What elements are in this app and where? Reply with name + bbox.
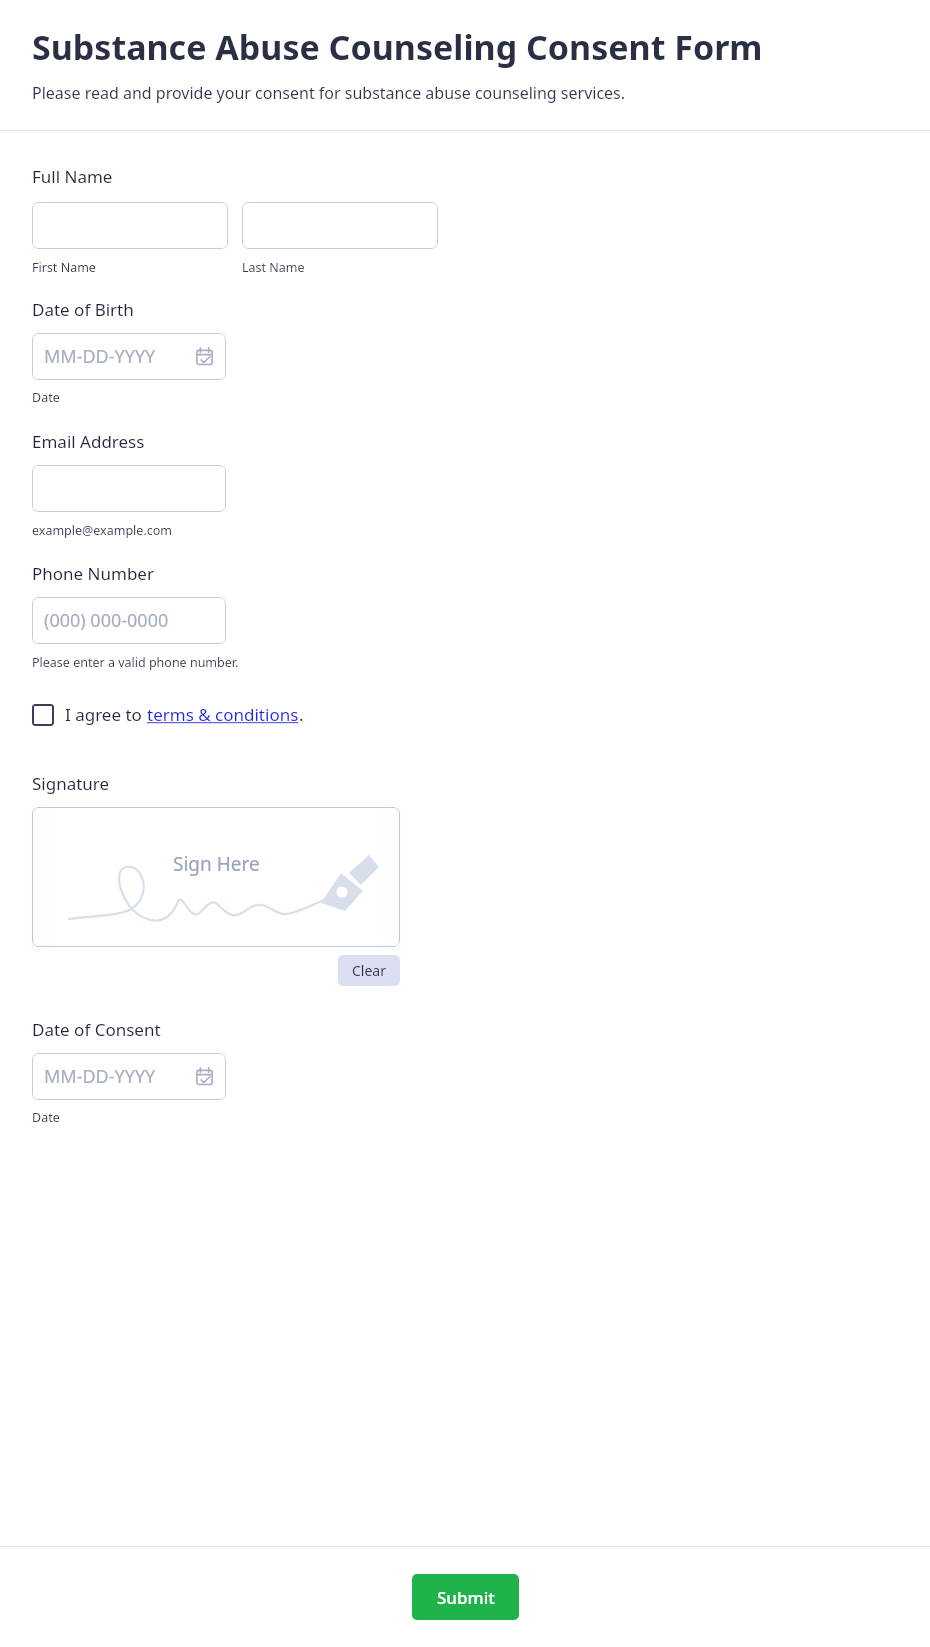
- staticText: .: [299, 703, 304, 726]
- staticText: MM-DD-YYYY: [44, 344, 156, 369]
- staticText: Submit: [437, 1586, 495, 1609]
- staticText: (000) 000-0000: [44, 608, 169, 633]
- staticText: Email Address: [32, 430, 145, 453]
- staticText: Date of Consent: [32, 1018, 161, 1041]
- staticText: I agree to: [65, 703, 147, 726]
- button[interactable]: MM-DD-YYYY: [32, 333, 226, 380]
- staticText: example@example.com: [32, 522, 172, 539]
- staticText: MM-DD-YYYY: [44, 1064, 156, 1089]
- button[interactable]: MM-DD-YYYY: [32, 1053, 226, 1100]
- staticText: Sign Here: [173, 851, 260, 877]
- button[interactable]: [32, 202, 228, 249]
- staticText: Phone Number: [32, 562, 154, 585]
- staticText: First Name: [32, 259, 96, 276]
- staticText: Clear: [352, 961, 386, 980]
- staticText: Last Name: [242, 259, 305, 276]
- staticText: Full Name: [32, 165, 113, 188]
- staticText: Date: [32, 389, 60, 406]
- staticText: Signature: [32, 772, 110, 795]
- staticText: Please enter a valid phone number.: [32, 654, 239, 671]
- button[interactable]: Clear: [338, 955, 400, 986]
- button[interactable]: [242, 202, 438, 249]
- button[interactable]: I agree to terms and conditions: [32, 704, 54, 726]
- button[interactable]: Signature pad, sign here: [32, 807, 400, 947]
- button[interactable]: [32, 465, 226, 512]
- staticText: Date of Birth: [32, 298, 134, 321]
- staticText: Date: [32, 1109, 60, 1126]
- button[interactable]: terms & conditions: [147, 703, 299, 726]
- button[interactable]: Submit: [412, 1574, 519, 1620]
- staticText: Substance Abuse Counseling Consent Form: [32, 24, 763, 70]
- button[interactable]: (000) 000-0000: [32, 597, 226, 644]
- staticText: Please read and provide your consent for…: [32, 82, 626, 104]
